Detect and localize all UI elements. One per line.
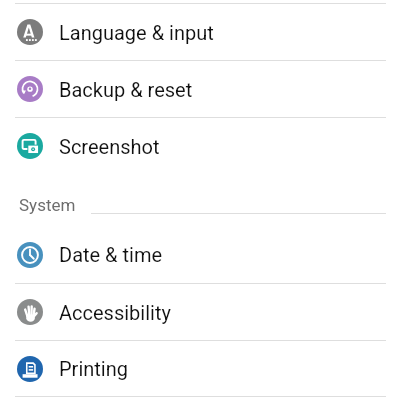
button[interactable]: Accessibility: [0, 284, 395, 340]
staticText: Screenshot: [59, 135, 160, 158]
button[interactable]: Screenshot: [0, 118, 395, 174]
button[interactable]: Backup & reset: [0, 61, 395, 117]
staticText: Backup & reset: [59, 78, 193, 101]
button[interactable]: Language & input: [0, 4, 395, 60]
staticText: System: [19, 195, 76, 215]
button[interactable]: Printing: [0, 341, 395, 396]
staticText: Printing: [59, 357, 128, 380]
staticText: Accessibility: [59, 301, 171, 324]
button[interactable]: Date & time: [0, 226, 395, 283]
staticText: Language & input: [59, 21, 214, 44]
staticText: Date & time: [59, 243, 163, 266]
